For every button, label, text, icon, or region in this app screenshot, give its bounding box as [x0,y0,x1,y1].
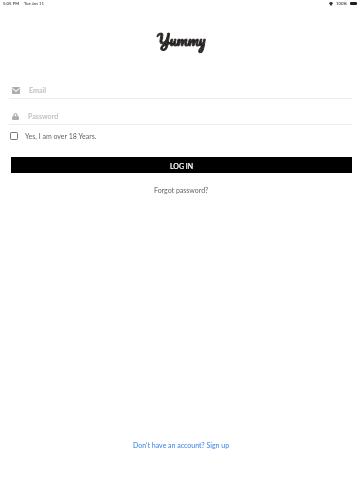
staticText: 5:05 PM [3,1,20,6]
staticText: Tue Jan 11 [24,1,45,6]
button[interactable]: Forgot password? [154,186,209,194]
button[interactable]: Yes, I am over 18 Years. [10,129,97,142]
staticText: Yummy [157,26,206,52]
other: Password [12,113,19,120]
staticText: Yummy [157,26,206,52]
button[interactable]: Password [12,110,360,123]
staticText: 100% [336,1,347,6]
other: Wi-Fi [329,2,333,6]
other: Battery full [350,2,357,5]
staticText: Yes, I am over 18 Years. [25,132,97,140]
button[interactable]: LOG IN [11,157,352,173]
staticText: Password [28,112,59,121]
other: Email [12,87,20,94]
button[interactable]: Don't have an account? Sign up [133,441,230,449]
button[interactable]: Email [12,84,360,97]
staticText: LOG IN [170,162,194,170]
staticText: Email [29,86,46,95]
